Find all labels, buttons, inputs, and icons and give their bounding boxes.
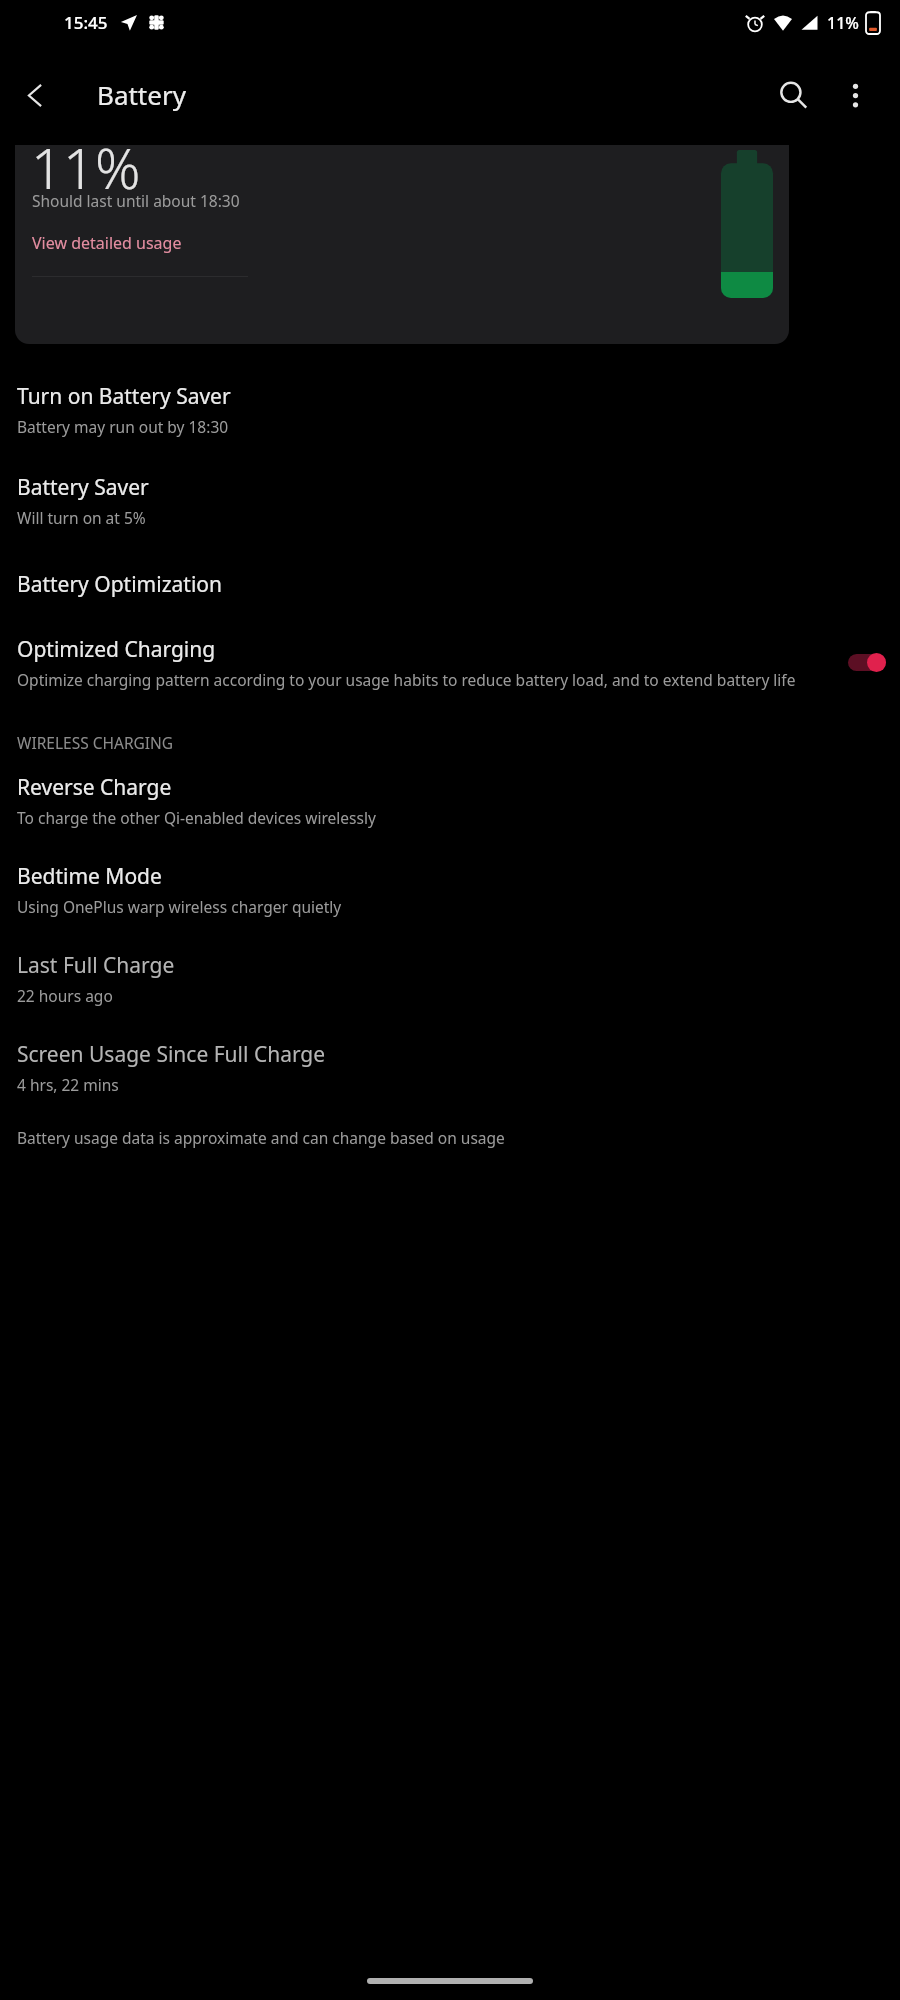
staticText: Using OnePlus warp wireless charger quie… [17,896,342,917]
staticText: Should last until about 18:30 [32,190,240,211]
staticText: Optimize charging pattern according to y… [17,669,796,690]
staticText: Will turn on at 5% [17,507,146,528]
staticText: 11% [31,145,141,205]
button[interactable]: More options [824,64,886,126]
staticText: Turn on Battery Saver [17,382,231,411]
button[interactable]: Search [762,64,824,126]
button[interactable]: Reverse Charge [0,765,900,836]
staticText: Battery Saver [17,473,149,502]
button[interactable]: Optimized Charging [0,629,900,696]
staticText: 11% [827,12,859,34]
button[interactable]: 11% [15,145,789,344]
staticText: Battery usage data is approximate and ca… [17,1127,505,1148]
staticText: 15:45 [64,11,108,34]
staticText: Battery may run out by 18:30 [17,416,229,437]
staticText: Optimized Charging [17,635,216,664]
staticText: 22 hours ago [17,985,113,1006]
staticText: 4 hrs, 22 mins [17,1074,119,1095]
staticText: Reverse Charge [17,773,172,802]
button[interactable]: Battery Optimization [0,562,900,607]
staticText: Screen Usage Since Full Charge [17,1040,326,1069]
button[interactable]: Battery Saver [0,465,900,536]
staticText: Battery Optimization [17,570,222,599]
staticText: Last Full Charge [17,951,175,980]
staticText: To charge the other Qi-enabled devices w… [17,807,376,828]
button[interactable]: Last Full Charge [0,943,900,1014]
button[interactable]: Back [6,65,66,125]
button[interactable]: Optimized Charging toggle, on [848,653,886,672]
staticText: WIRELESS CHARGING [17,732,174,753]
staticText: Bedtime Mode [17,862,162,891]
button[interactable]: View detailed usage [32,232,182,254]
button[interactable]: Screen Usage Since Full Charge [0,1032,900,1103]
button[interactable]: Turn on Battery Saver [0,374,900,445]
button[interactable]: Bedtime Mode [0,854,900,925]
staticText: Battery [97,77,186,112]
